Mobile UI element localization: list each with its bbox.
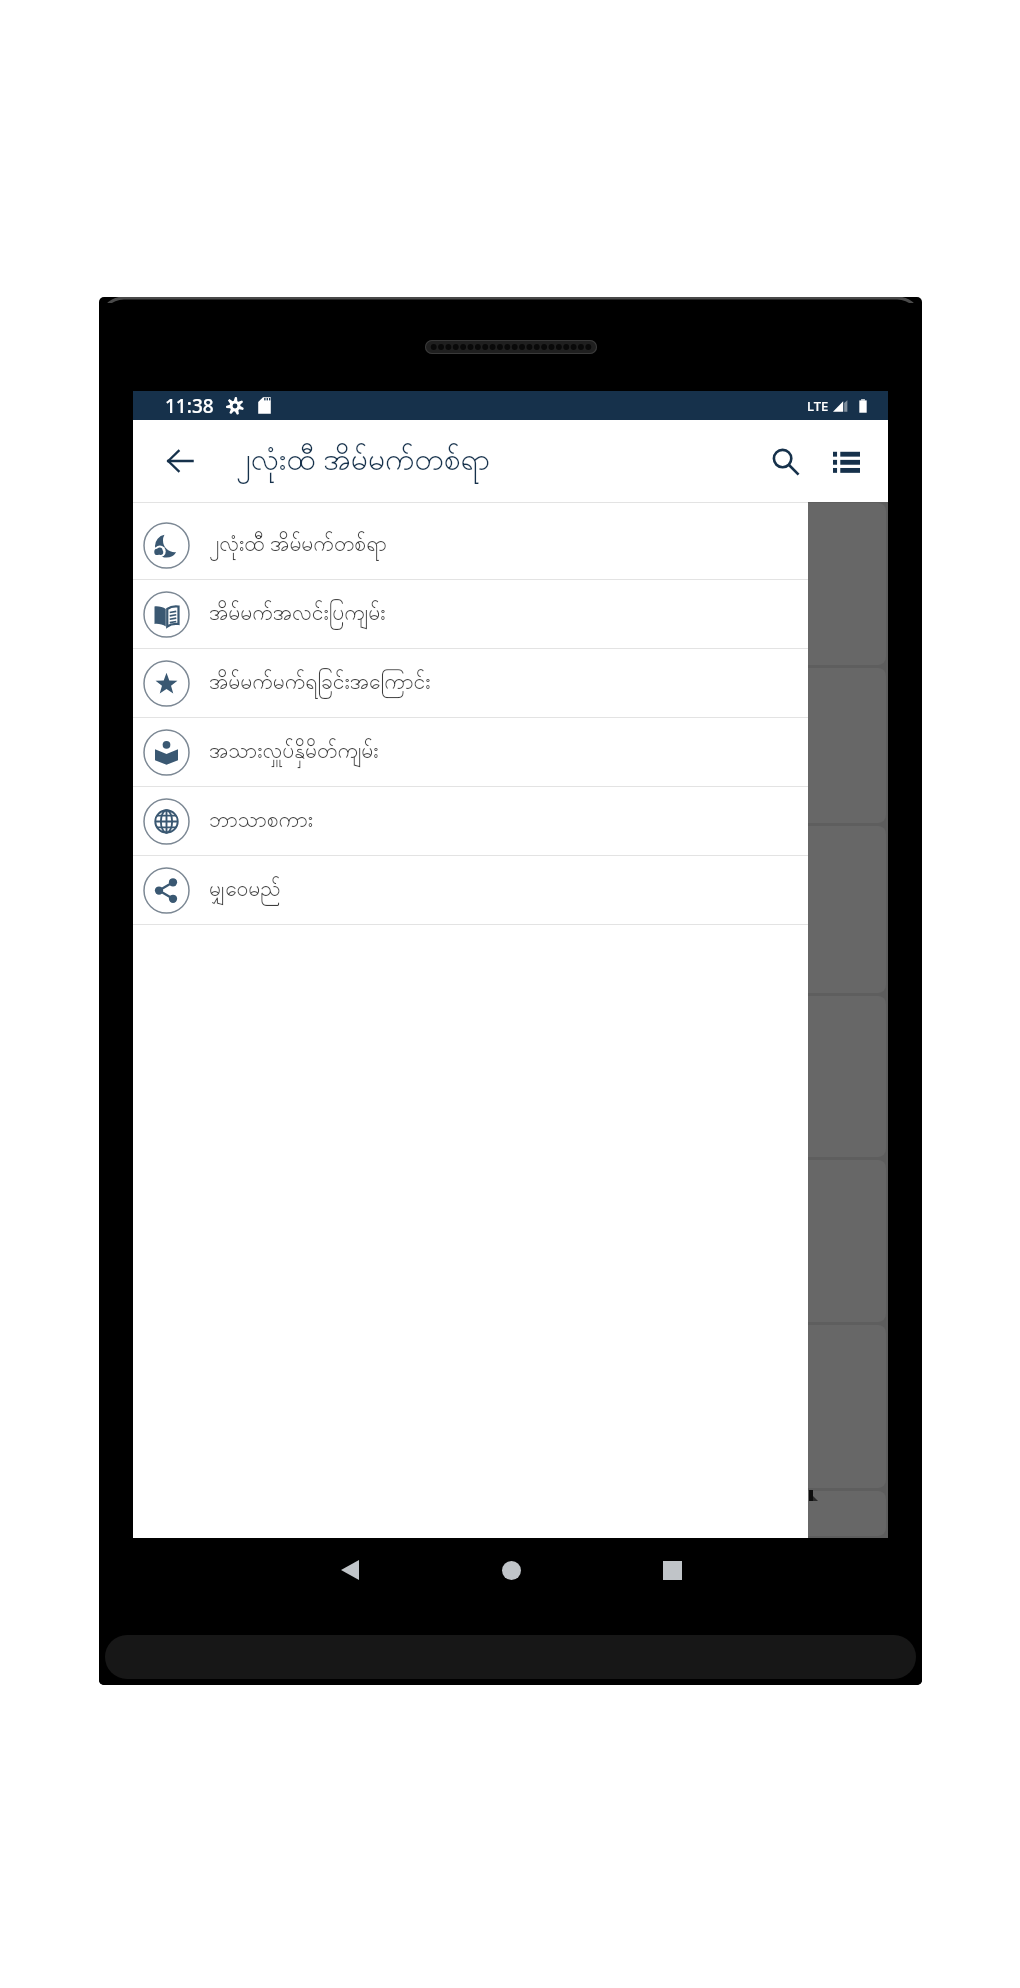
staticText: LTE [807,397,829,415]
staticText: အသားလှူပ်နှိမိတ်ကျမ်း [209,737,379,768]
staticText: အိမ်မက်မက်ရခြင်းအကြောင်း [209,668,431,699]
button[interactable]: Home [471,1530,551,1610]
button[interactable]: အိမ်မက်မက်ရခြင်းအကြောင်း [133,649,808,718]
staticText: မျှဝေမည် [209,875,281,906]
button[interactable]: Back [310,1530,390,1610]
button[interactable]: မျှဝေမည် [133,856,808,925]
staticText: ၂လုံးထီ အိမ်မက်တစ်ရာ [209,529,387,562]
button[interactable]: List view [818,433,874,489]
button[interactable]: အသားလှူပ်နှိမိတ်ကျမ်း [133,718,808,787]
button[interactable]: Back [155,436,205,486]
button[interactable]: Recents [632,1530,712,1610]
staticText: 11:38 [165,393,214,419]
staticText: အိမ်မက်အလင်းပြကျမ်း [209,599,386,630]
button[interactable]: ဘာသာစကား [133,787,808,856]
button[interactable]: အိမ်မက်အလင်းပြကျမ်း [133,580,808,649]
button[interactable]: ၂လုံးထီ အိမ်မက်တစ်ရာ [133,511,808,580]
button[interactable]: Search [757,433,813,489]
staticText: ၂လုံးထီ အိမ်မက်တစ်ရာ [236,438,491,485]
staticText: ဘာသာစကား [209,806,314,837]
